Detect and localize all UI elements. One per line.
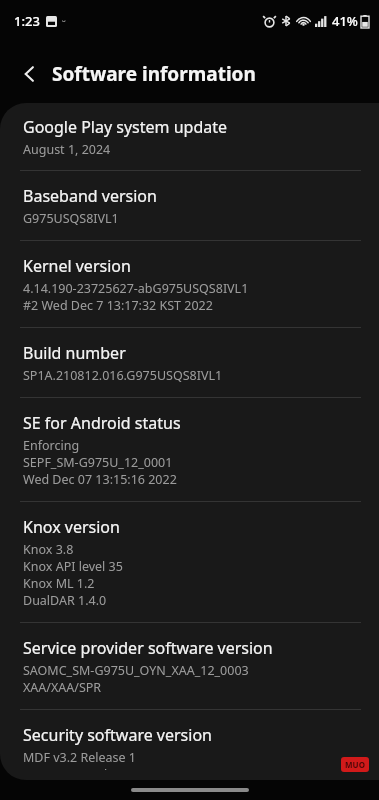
staticText: Google Play system update <box>23 116 228 138</box>
staticText: SP1A.210812.016.G975USQS8IVL1 <box>23 367 223 384</box>
staticText: Knox ML 1.2 <box>23 575 95 592</box>
staticText: Service provider software version <box>23 637 273 659</box>
staticText: Knox 3.8 <box>23 541 74 558</box>
staticText: Baseband version <box>23 185 157 207</box>
staticText: MDF v3.2 Release 1 <box>23 749 137 766</box>
button[interactable]: Google Play system update <box>0 103 379 170</box>
staticText: Knox version <box>23 516 120 538</box>
staticText: SE for Android status <box>23 412 181 434</box>
staticText: #2 Wed Dec 7 13:17:32 KST 2022 <box>23 297 213 314</box>
staticText: 41% <box>332 12 358 30</box>
staticText: 4.14.190-23725627-abG975USQS8IVL1 <box>23 280 249 297</box>
staticText: August 1, 2024 <box>23 141 111 158</box>
button[interactable]: Security software version <box>0 710 379 780</box>
button[interactable]: SE for Android status <box>0 398 379 501</box>
staticText: Build number <box>23 342 126 364</box>
staticText: SEPF_SM-G975U_12_0001 <box>23 454 173 471</box>
button[interactable]: Kernel version <box>0 241 379 327</box>
staticText: G975USQS8IVL1 <box>23 210 119 227</box>
staticText: Wed Dec 07 13:15:16 2022 <box>23 471 177 488</box>
staticText: DualDAR 1.4.0 <box>23 592 107 609</box>
button[interactable]: Back <box>10 54 50 94</box>
button[interactable]: Baseband version <box>0 171 379 240</box>
staticText: XAA/XAA/SPR <box>23 679 102 696</box>
staticText: WLAN v1.0 Release 2 <box>23 766 145 770</box>
staticText: Knox API level 35 <box>23 558 123 575</box>
staticText: Software information <box>52 61 256 87</box>
staticText: Enforcing <box>23 437 80 454</box>
button[interactable]: Service provider software version <box>0 623 379 709</box>
staticText: 1:23 <box>14 12 40 30</box>
staticText: ᵕ <box>62 15 66 27</box>
button[interactable]: Build number <box>0 328 379 397</box>
staticText: Security software version <box>23 724 212 746</box>
button[interactable]: Knox version <box>0 502 379 622</box>
staticText: SAOMC_SM-G975U_OYN_XAA_12_0003 <box>23 662 249 679</box>
staticText: MUO <box>345 759 365 770</box>
staticText: Kernel version <box>23 255 131 277</box>
